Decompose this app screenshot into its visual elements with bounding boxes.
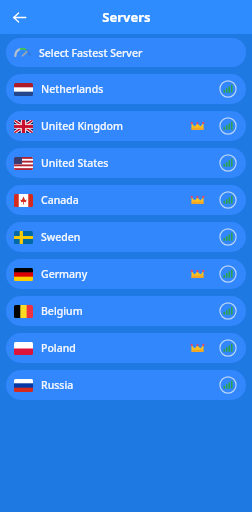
staticText: Germany xyxy=(41,267,88,281)
staticText: Servers xyxy=(102,8,151,26)
button[interactable]: Belgium xyxy=(6,296,246,326)
button[interactable]: Germany xyxy=(6,259,246,289)
staticText: United States xyxy=(41,156,109,170)
staticText: Poland xyxy=(41,341,76,355)
button[interactable]: Poland xyxy=(6,333,246,363)
button[interactable]: Netherlands xyxy=(6,74,246,104)
staticText: Canada xyxy=(41,193,79,207)
button[interactable]: United States xyxy=(6,148,246,178)
staticText: Netherlands xyxy=(41,82,104,96)
staticText: United Kingdom xyxy=(41,119,123,133)
staticText: Belgium xyxy=(41,304,83,318)
staticText: Sweden xyxy=(41,230,81,244)
button[interactable]: Select Fastest Server xyxy=(6,38,246,67)
staticText: Select Fastest Server xyxy=(39,46,143,60)
staticText: Russia xyxy=(41,378,74,392)
button[interactable]: Canada xyxy=(6,185,246,215)
button[interactable]: United Kingdom xyxy=(6,111,246,141)
button[interactable]: Sweden xyxy=(6,222,246,252)
button[interactable]: Russia xyxy=(6,370,246,400)
button[interactable]: Back xyxy=(5,3,33,31)
